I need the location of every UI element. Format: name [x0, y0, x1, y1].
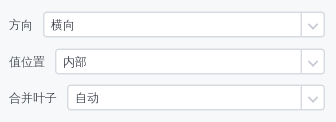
- other: Open dropdown: [301, 48, 325, 75]
- staticText: 横向: [51, 17, 75, 32]
- button[interactable]: 内部: [55, 48, 325, 75]
- other: Open dropdown: [301, 11, 325, 38]
- button[interactable]: 自动: [67, 84, 325, 111]
- staticText: 值位置: [9, 54, 45, 69]
- staticText: 方向: [9, 17, 33, 32]
- staticText: 内部: [63, 54, 87, 69]
- staticText: 自动: [75, 90, 99, 105]
- staticText: 合并叶子: [9, 90, 57, 105]
- other: Open dropdown: [301, 84, 325, 111]
- button[interactable]: 横向: [43, 11, 325, 38]
